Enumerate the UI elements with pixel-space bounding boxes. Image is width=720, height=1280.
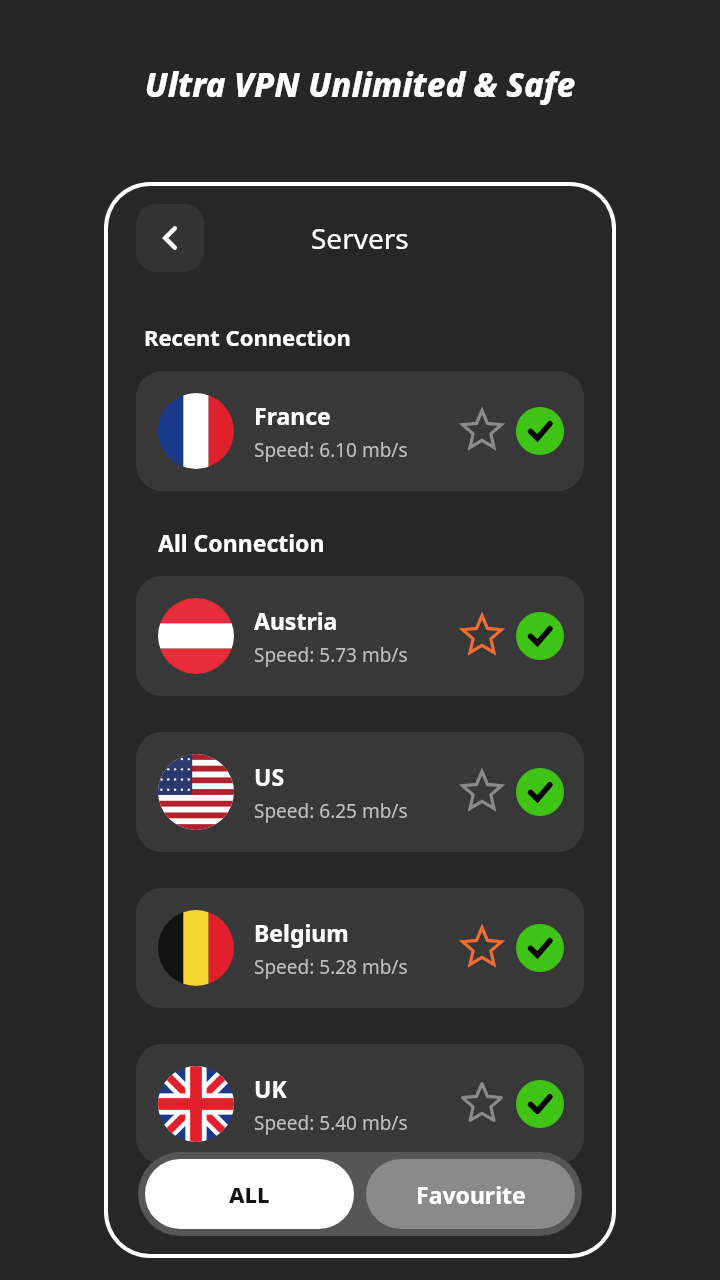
staticText: ALL xyxy=(229,1179,270,1209)
button[interactable]: Connect xyxy=(516,612,564,660)
staticText: Speed: 6.25 mb/s xyxy=(254,798,408,824)
button[interactable]: France xyxy=(136,371,584,491)
staticText: Favourite xyxy=(416,1179,526,1210)
button[interactable]: UK xyxy=(136,1044,584,1164)
button[interactable]: Favourite xyxy=(454,1076,510,1132)
staticText: Ultra VPN Unlimited & Safe xyxy=(0,62,720,107)
button[interactable]: Connect xyxy=(516,407,564,455)
button[interactable]: Connect xyxy=(516,1080,564,1128)
staticText: Austria xyxy=(254,605,338,636)
staticText: Belgium xyxy=(254,917,349,948)
button[interactable]: Favourite xyxy=(454,764,510,820)
staticText: Speed: 5.28 mb/s xyxy=(254,954,408,980)
staticText: All Connection xyxy=(158,527,325,558)
button[interactable]: Connect xyxy=(516,768,564,816)
button[interactable]: Austria xyxy=(136,576,584,696)
staticText: US xyxy=(254,761,285,792)
staticText: UK xyxy=(254,1073,287,1104)
button[interactable]: Favourite xyxy=(366,1159,575,1229)
button[interactable]: Belgium xyxy=(136,888,584,1008)
staticText: Servers xyxy=(311,219,409,257)
button[interactable]: Back xyxy=(136,204,204,272)
button[interactable]: Favourite xyxy=(454,920,510,976)
staticText: Recent Connection xyxy=(144,322,351,352)
button[interactable]: Favourite xyxy=(454,608,510,664)
button[interactable]: US xyxy=(136,732,584,852)
staticText: Speed: 5.40 mb/s xyxy=(254,1110,408,1136)
staticText: Speed: 5.73 mb/s xyxy=(254,642,408,668)
button[interactable]: Connect xyxy=(516,924,564,972)
button[interactable]: ALL xyxy=(145,1159,354,1229)
staticText: France xyxy=(254,400,331,431)
staticText: Speed: 6.10 mb/s xyxy=(254,437,408,463)
button[interactable]: Favourite xyxy=(454,403,510,459)
